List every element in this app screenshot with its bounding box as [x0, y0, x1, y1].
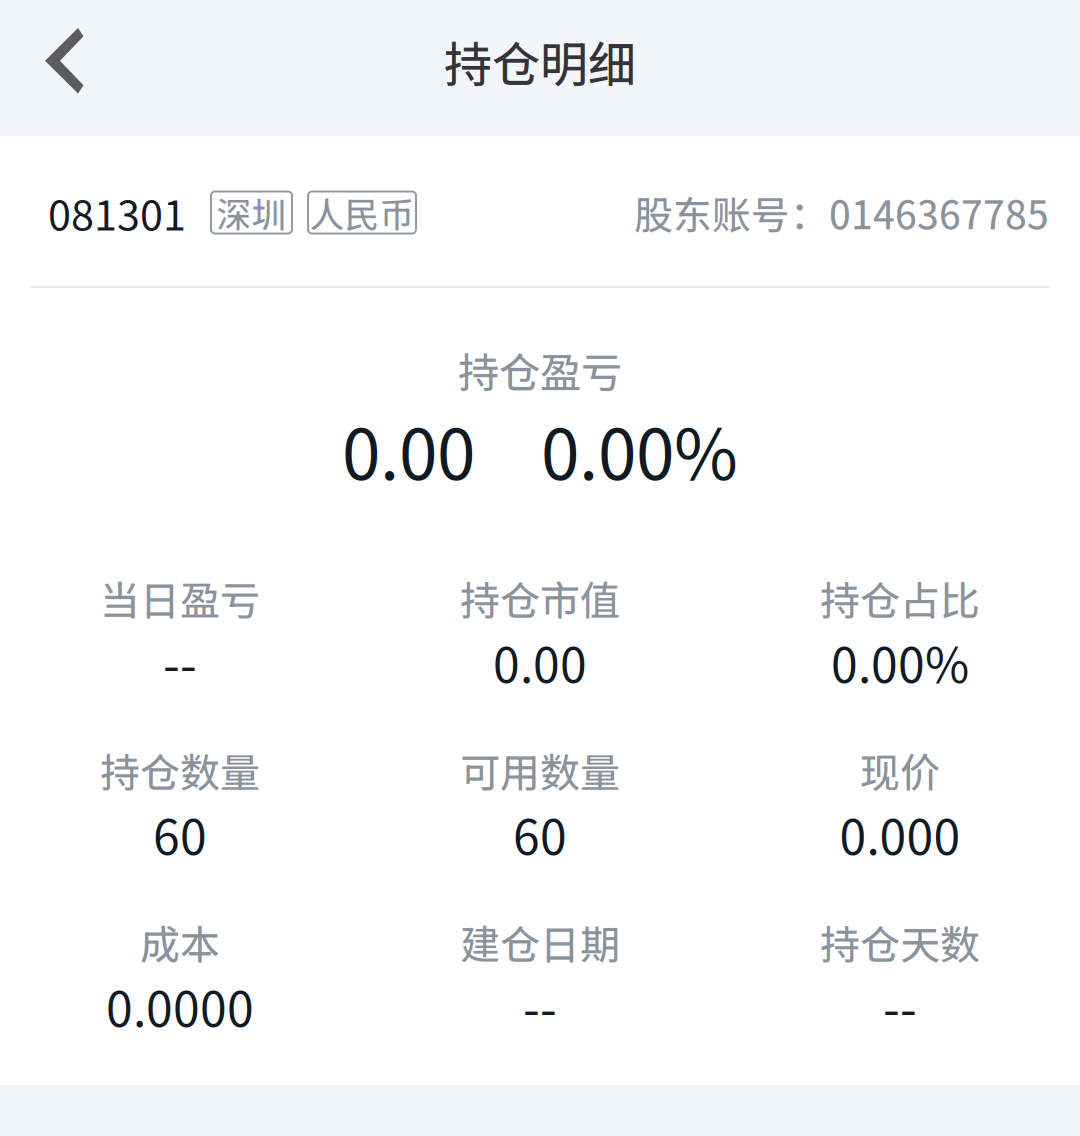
staticText: 0.00% [831, 627, 969, 697]
staticText: 60 [513, 799, 567, 869]
staticText: 持仓明细 [444, 26, 636, 96]
staticText: 深圳 [216, 187, 286, 238]
staticText: 建仓日期 [460, 913, 620, 971]
staticText: 081301 [48, 183, 186, 242]
staticText: 可用数量 [460, 741, 620, 799]
staticText: 0.0000 [106, 971, 254, 1041]
staticText: 持仓盈亏 [458, 340, 622, 400]
button[interactable]: Back [0, 0, 140, 136]
staticText: 0.00 [493, 627, 587, 697]
staticText: 人民币 [309, 187, 414, 238]
staticText: 成本 [140, 913, 220, 971]
staticText: 持仓数量 [100, 741, 260, 799]
staticText: -- [523, 971, 557, 1041]
staticText: 0.00 [342, 399, 475, 500]
staticText: 现价 [860, 741, 940, 799]
staticText: 0.000 [839, 799, 960, 869]
staticText: 持仓市值 [460, 569, 620, 627]
staticText: 持仓天数 [820, 913, 980, 971]
staticText: 股东账号：0146367785 [634, 184, 1049, 240]
staticText: -- [163, 627, 197, 697]
staticText: 持仓占比 [820, 569, 980, 627]
staticText: 60 [153, 799, 207, 869]
staticText: 0.00% [541, 399, 738, 500]
staticText: -- [883, 971, 917, 1041]
staticText: 当日盈亏 [100, 569, 260, 627]
